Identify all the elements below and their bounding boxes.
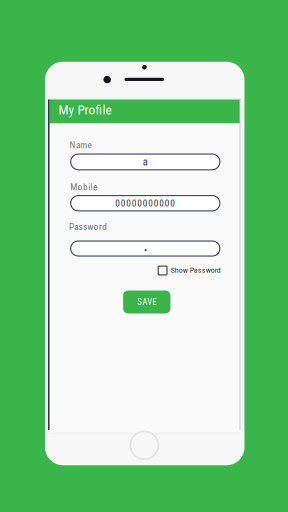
staticText: Show Password	[171, 265, 221, 275]
button[interactable]: SAVE	[123, 290, 170, 313]
staticText: a	[143, 156, 148, 168]
staticText: Name	[70, 139, 92, 150]
staticText: 00000000000	[115, 198, 175, 209]
staticText: Mobile	[70, 181, 97, 192]
staticText: Password	[69, 221, 107, 232]
staticText: SAVE	[137, 297, 156, 307]
button[interactable]: Show Password	[158, 265, 221, 275]
staticText: My Profile	[58, 102, 111, 118]
